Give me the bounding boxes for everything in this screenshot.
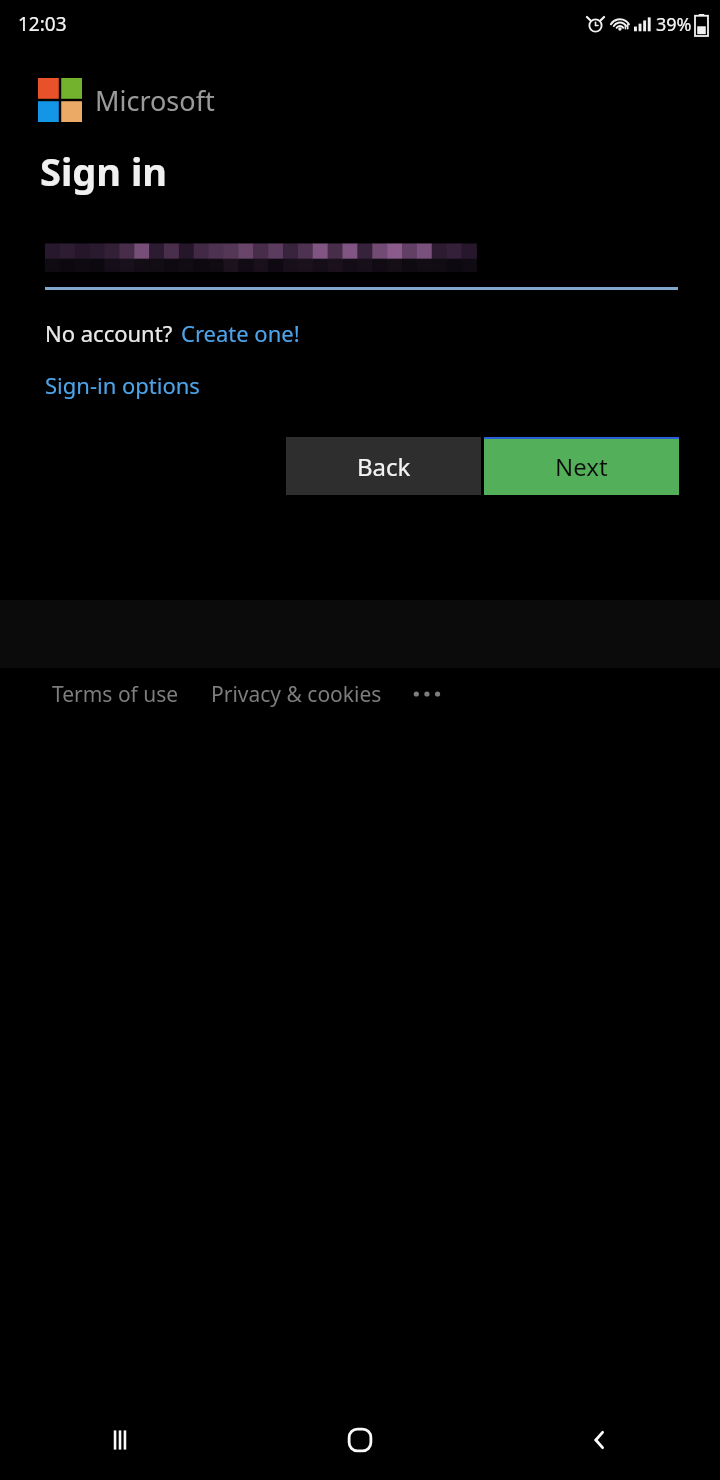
- button[interactable]: Microsoft: [38, 78, 215, 122]
- staticText: Sign-in options: [45, 370, 200, 400]
- button[interactable]: Sign-in options: [45, 370, 200, 400]
- staticText: Microsoft: [95, 82, 215, 119]
- staticText: Privacy & cookies: [211, 680, 382, 709]
- button[interactable]: Next: [484, 437, 679, 495]
- button[interactable]: Back: [286, 437, 481, 495]
- staticText: 39%: [656, 12, 692, 37]
- staticText: Next: [555, 450, 608, 483]
- staticText: No account?: [45, 318, 173, 348]
- staticText: 12:03: [18, 11, 67, 37]
- button[interactable]: Privacy & cookies: [211, 680, 382, 709]
- staticText: Terms of use: [52, 680, 179, 709]
- button[interactable]: Home: [240, 1400, 480, 1480]
- staticText: Back: [357, 450, 411, 483]
- button[interactable]: Terms of use: [52, 680, 179, 709]
- staticText: Sign in: [40, 145, 167, 197]
- staticText: Create one!: [181, 318, 300, 348]
- button[interactable]: Back: [480, 1400, 720, 1480]
- button[interactable]: [45, 242, 678, 290]
- button[interactable]: More options: [408, 674, 448, 714]
- button[interactable]: Create one!: [181, 318, 300, 348]
- button[interactable]: Recent apps: [0, 1400, 240, 1480]
